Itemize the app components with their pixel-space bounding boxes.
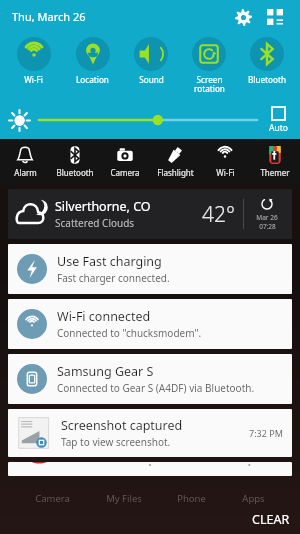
staticText: Camera xyxy=(35,492,70,505)
staticText: Thu, March 26 xyxy=(12,9,86,24)
button[interactable]: Wi-Fi xyxy=(200,143,250,181)
staticText: Bluetooth xyxy=(248,74,286,85)
staticText: Tap to view screenshot. xyxy=(61,435,171,449)
button[interactable]: Auto xyxy=(267,107,290,134)
staticText: 07:28 xyxy=(259,222,276,231)
button[interactable]: Settings xyxy=(230,4,256,30)
staticText: Alarm xyxy=(14,167,37,178)
button[interactable]: Samsung Gear S xyxy=(8,354,292,404)
staticText: Themer xyxy=(260,167,290,178)
staticText: Mar 26 xyxy=(256,213,278,222)
staticText: 7:32 PM xyxy=(249,427,283,439)
staticText: 42° xyxy=(202,200,235,229)
button[interactable] xyxy=(8,462,292,476)
button[interactable]: Location xyxy=(63,35,122,87)
staticText: Apps xyxy=(242,492,265,505)
staticText: Silverthorne, CO xyxy=(55,198,151,215)
button[interactable]: Silverthorne, CO xyxy=(8,189,292,239)
staticText: Fast charger connected. xyxy=(57,271,170,285)
staticText: Wi-Fi xyxy=(216,167,235,178)
staticText: Auto xyxy=(269,122,288,134)
button[interactable]: CLEAR xyxy=(252,511,300,534)
button[interactable]: Flashlight xyxy=(150,143,200,181)
button[interactable] xyxy=(39,109,257,131)
staticText: My Files xyxy=(106,492,142,505)
staticText: Screenshot captured xyxy=(61,417,183,434)
staticText: Camera xyxy=(110,167,140,178)
staticText: Wi-Fi connected xyxy=(57,308,151,325)
button[interactable]: Camera xyxy=(100,143,150,181)
staticText: Flashlight xyxy=(157,167,194,178)
staticText: Wi-Fi xyxy=(24,74,43,85)
button[interactable]: Wi-Fi xyxy=(4,35,63,87)
button[interactable]: Refresh weather xyxy=(250,197,284,231)
staticText: Screen rotation xyxy=(194,74,225,95)
button[interactable]: Bluetooth xyxy=(50,143,100,181)
staticText: Location xyxy=(76,74,109,85)
button[interactable]: Alarm xyxy=(0,143,50,181)
button[interactable]: Bluetooth xyxy=(238,35,296,87)
button[interactable]: Sound xyxy=(122,35,180,87)
staticText: Connected to "chucksmodem". xyxy=(57,326,202,340)
staticText: Use Fast charging xyxy=(57,253,162,270)
staticText: Samsung Gear S xyxy=(57,363,154,380)
staticText: Phone xyxy=(177,492,206,505)
button[interactable]: Edit quick settings xyxy=(262,4,288,30)
button[interactable]: Screen rotation xyxy=(180,35,238,97)
staticText: Scattered Clouds xyxy=(55,216,135,230)
staticText: CLEAR xyxy=(252,511,290,528)
button[interactable]: Screenshot captured xyxy=(8,409,292,457)
button[interactable]: Use Fast charging xyxy=(8,244,292,294)
button[interactable]: Wi-Fi connected xyxy=(8,299,292,349)
staticText: Connected to Gear S (A4DF) via Bluetooth… xyxy=(57,381,255,395)
button[interactable]: Themer xyxy=(250,143,300,181)
staticText: Sound xyxy=(139,74,164,85)
staticText: Bluetooth xyxy=(56,167,94,178)
